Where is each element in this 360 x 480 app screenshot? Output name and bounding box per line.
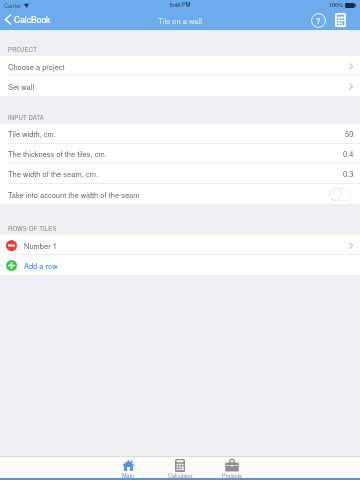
staticText: ROWS OF TILES bbox=[8, 224, 57, 233]
button[interactable]: Take into account the width of the seam bbox=[329, 188, 352, 201]
button[interactable]: Main bbox=[102, 459, 154, 480]
staticText: INPUT DATA bbox=[8, 113, 44, 122]
button[interactable]: Choose a project bbox=[0, 56, 360, 76]
staticText: 50 bbox=[345, 128, 354, 139]
button[interactable]: Projects bbox=[206, 459, 258, 480]
button[interactable]: Tile width, cm. bbox=[0, 124, 360, 144]
staticText: Tile on a wall bbox=[0, 15, 360, 26]
button[interactable]: Number 1 bbox=[0, 235, 360, 255]
button[interactable]: Add a row bbox=[0, 255, 360, 275]
button[interactable]: The thickness of the tiles, cm. bbox=[0, 144, 360, 164]
staticText: Projects bbox=[222, 472, 242, 480]
staticText: PROJECT bbox=[8, 45, 37, 54]
staticText: 0.3 bbox=[343, 168, 354, 179]
staticText: Main bbox=[122, 472, 134, 480]
staticText: Calculator bbox=[168, 472, 193, 480]
staticText: Take into account the width of the seam bbox=[8, 189, 140, 200]
button[interactable]: Calculator bbox=[154, 459, 206, 480]
staticText: 0.4 bbox=[343, 148, 354, 159]
button[interactable]: Calculator bbox=[333, 11, 348, 28]
staticText: 100% bbox=[329, 1, 344, 9]
staticText: 5:46 PM bbox=[0, 1, 360, 9]
button[interactable]: Set wall bbox=[0, 76, 360, 96]
staticText: The thickness of the tiles, cm. bbox=[8, 148, 107, 159]
button[interactable]: Help bbox=[310, 12, 326, 28]
staticText: Carrier bbox=[4, 2, 21, 10]
staticText: Choose a project bbox=[8, 61, 65, 72]
staticText: CalcBook bbox=[14, 13, 51, 25]
staticText: The width of the seam, cm. bbox=[8, 168, 98, 179]
staticText: Tile width, cm. bbox=[8, 128, 56, 139]
staticText: ? bbox=[316, 15, 321, 26]
button[interactable]: CalcBook bbox=[4, 11, 51, 27]
staticText: Add a row bbox=[24, 260, 58, 271]
button[interactable]: The width of the seam, cm. bbox=[0, 164, 360, 184]
staticText: Set wall bbox=[8, 81, 35, 92]
staticText: Number 1 bbox=[24, 240, 57, 251]
